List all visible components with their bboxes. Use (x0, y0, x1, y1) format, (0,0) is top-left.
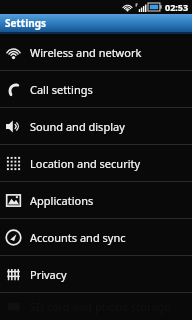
button[interactable]: Sound and display (0, 108, 192, 144)
staticText: 02:53 (165, 1, 189, 13)
button[interactable]: Location and security (0, 145, 192, 181)
button[interactable]: Accounts and sync (0, 219, 192, 255)
staticText: Call settings (30, 82, 93, 97)
staticText: Privacy (30, 267, 67, 282)
staticText: Applications (30, 193, 94, 208)
button[interactable]: Privacy (0, 256, 192, 292)
staticText: Location and security (30, 156, 141, 171)
staticText: Settings (5, 16, 46, 30)
button[interactable]: Applications (0, 182, 192, 218)
button[interactable]: Call settings (0, 71, 192, 107)
staticText: Wireless and network (30, 45, 142, 60)
staticText: Sound and display (30, 119, 125, 134)
staticText: Accounts and sync (30, 230, 126, 245)
button[interactable]: Wireless and network (0, 34, 192, 70)
